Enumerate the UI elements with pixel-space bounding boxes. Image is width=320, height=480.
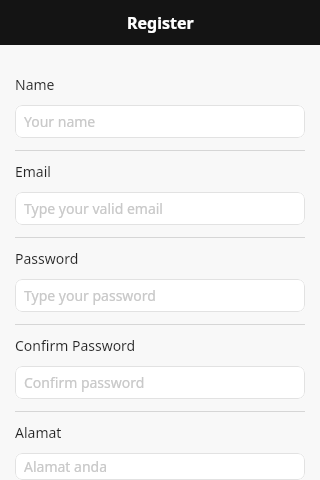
staticText: Confirm Password <box>15 336 136 355</box>
button[interactable]: Type your valid email <box>15 192 305 225</box>
button[interactable]: Your name <box>15 105 305 138</box>
staticText: Register <box>127 12 194 34</box>
staticText: Type your password <box>24 286 156 305</box>
staticText: Email <box>15 162 51 181</box>
button[interactable]: Type your password <box>15 279 305 312</box>
staticText: Your name <box>24 112 96 131</box>
button[interactable]: Confirm password <box>15 366 305 399</box>
staticText: Password <box>15 249 79 268</box>
staticText: Confirm password <box>24 373 145 392</box>
staticText: Alamat anda <box>24 457 108 476</box>
staticText: Name <box>15 75 55 94</box>
staticText: Alamat <box>15 423 62 442</box>
staticText: Type your valid email <box>24 199 163 218</box>
button[interactable]: Alamat anda <box>15 453 305 480</box>
